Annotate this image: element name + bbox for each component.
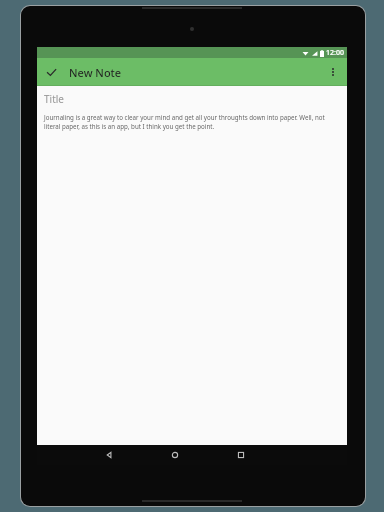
- staticText: Title: [44, 92, 64, 106]
- staticText: Journaling is a great way to clear your …: [44, 113, 340, 131]
- staticText: New Note: [69, 65, 122, 80]
- button[interactable]: Title: [44, 92, 340, 106]
- button[interactable]: More options: [319, 58, 347, 86]
- staticText: 12:00: [326, 48, 344, 58]
- button[interactable]: Save note: [37, 58, 65, 86]
- button[interactable]: Home: [165, 445, 185, 465]
- button[interactable]: Back: [99, 445, 119, 465]
- button[interactable]: Recent apps: [231, 445, 251, 465]
- button[interactable]: Journaling is a great way to clear your …: [44, 113, 340, 131]
